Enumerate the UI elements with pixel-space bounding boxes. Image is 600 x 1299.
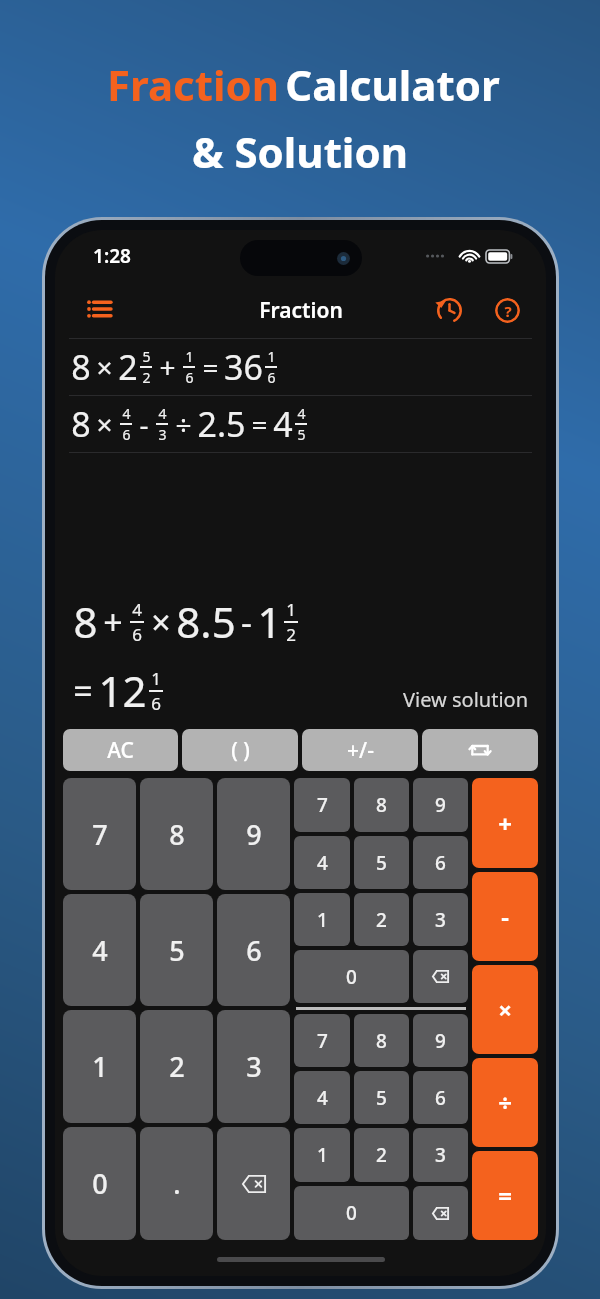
button[interactable]: Delete bbox=[413, 950, 468, 1003]
button[interactable]: 1 bbox=[63, 1010, 136, 1123]
button[interactable]: 5 bbox=[354, 836, 409, 889]
staticText: × bbox=[96, 405, 113, 443]
button[interactable]: 9 bbox=[217, 778, 290, 890]
staticText: 2 bbox=[142, 368, 151, 387]
staticText: 4 bbox=[317, 850, 328, 876]
button[interactable]: Delete bbox=[413, 1186, 468, 1240]
staticText: 6 bbox=[132, 623, 142, 646]
staticText: 5 bbox=[376, 850, 387, 876]
button[interactable]: 4 bbox=[294, 836, 350, 889]
staticText: × bbox=[498, 993, 512, 1026]
staticText: 1 bbox=[185, 347, 194, 366]
button[interactable]: +/- bbox=[302, 729, 418, 771]
staticText: 9 bbox=[246, 816, 262, 853]
staticText: 1 bbox=[257, 593, 282, 650]
staticText: 2 bbox=[376, 1142, 387, 1168]
button[interactable]: 1 bbox=[294, 1128, 350, 1182]
staticText: 5 bbox=[142, 347, 151, 366]
button[interactable]: 9 bbox=[413, 1014, 468, 1067]
button[interactable]: - bbox=[472, 872, 538, 961]
staticText: - bbox=[139, 405, 149, 443]
staticText: 4 bbox=[158, 404, 167, 423]
button[interactable]: 7 bbox=[294, 778, 350, 832]
staticText: + bbox=[159, 348, 176, 386]
staticText: 4 bbox=[132, 598, 142, 621]
staticText: = bbox=[202, 348, 219, 386]
staticText: 9 bbox=[435, 792, 446, 818]
button[interactable]: 7 bbox=[294, 1014, 350, 1067]
button[interactable]: ÷ bbox=[472, 1058, 538, 1147]
staticText: 5 bbox=[297, 425, 306, 444]
staticText: 6 bbox=[435, 1085, 446, 1111]
staticText: × bbox=[96, 348, 113, 386]
staticText: 4 bbox=[122, 404, 131, 423]
staticText: 1 bbox=[286, 598, 296, 621]
button[interactable]: 0 bbox=[294, 1186, 409, 1240]
staticText: 2.5 bbox=[197, 401, 246, 447]
staticText: 1 bbox=[267, 347, 276, 366]
button[interactable]: 9 bbox=[413, 778, 468, 832]
staticText: = bbox=[73, 668, 93, 714]
button[interactable]: 0 bbox=[294, 950, 409, 1003]
button[interactable]: = bbox=[472, 1151, 538, 1240]
button[interactable]: 2 bbox=[140, 1010, 213, 1123]
button[interactable]: 6 bbox=[413, 1071, 468, 1124]
button[interactable]: 2 bbox=[354, 893, 409, 946]
staticText: 4 bbox=[317, 1085, 328, 1111]
staticText: & Solution bbox=[192, 123, 408, 180]
button[interactable]: 4 bbox=[294, 1071, 350, 1124]
button[interactable]: ( ) bbox=[182, 729, 298, 771]
staticText: 3 bbox=[158, 425, 167, 444]
staticText: 8 bbox=[169, 816, 185, 853]
staticText: 7 bbox=[92, 816, 108, 853]
button[interactable]: 3 bbox=[413, 1128, 468, 1182]
button[interactable]: . bbox=[140, 1127, 213, 1240]
button[interactable]: Help bbox=[486, 289, 528, 331]
staticText: × bbox=[151, 599, 171, 645]
staticText: = bbox=[498, 1179, 512, 1212]
button[interactable]: Swap bbox=[422, 729, 538, 771]
button[interactable]: 3 bbox=[217, 1010, 290, 1123]
button[interactable]: Menu bbox=[77, 288, 121, 332]
staticText: 1 bbox=[317, 1142, 328, 1168]
staticText: 9 bbox=[435, 1028, 446, 1054]
staticText: + bbox=[103, 599, 123, 645]
staticText: 5 bbox=[376, 1085, 387, 1111]
staticText: 8 bbox=[71, 401, 91, 447]
staticText: 8 bbox=[73, 593, 98, 650]
button[interactable]: History bbox=[428, 289, 470, 331]
button[interactable]: 3 bbox=[413, 893, 468, 946]
button[interactable]: 2 bbox=[354, 1128, 409, 1182]
button[interactable]: 8 bbox=[55, 396, 546, 452]
button[interactable]: 7 bbox=[63, 778, 136, 890]
button[interactable]: 6 bbox=[217, 894, 290, 1006]
staticText: Calculator bbox=[285, 56, 500, 113]
staticText: 5 bbox=[169, 932, 185, 969]
button[interactable]: 5 bbox=[354, 1071, 409, 1124]
button[interactable]: × bbox=[472, 965, 538, 1054]
staticText: 3 bbox=[435, 1142, 446, 1168]
staticText: - bbox=[241, 599, 252, 645]
staticText: 4 bbox=[92, 932, 108, 969]
button[interactable]: 6 bbox=[413, 836, 468, 889]
button[interactable]: 4 bbox=[63, 894, 136, 1006]
button[interactable]: 8 bbox=[354, 778, 409, 832]
staticText: Fraction bbox=[259, 296, 343, 325]
staticText: ? bbox=[504, 301, 512, 321]
button[interactable]: 0 bbox=[63, 1127, 136, 1240]
button[interactable]: View solution bbox=[403, 686, 528, 719]
staticText: 6 bbox=[151, 692, 161, 715]
staticText: ÷ bbox=[498, 1086, 512, 1119]
button[interactable]: AC bbox=[63, 729, 178, 771]
staticText: 8 bbox=[71, 344, 91, 390]
button[interactable]: 8 bbox=[140, 778, 213, 890]
button[interactable]: 5 bbox=[140, 894, 213, 1006]
staticText: 7 bbox=[317, 1028, 328, 1054]
button[interactable]: 8 bbox=[55, 339, 546, 395]
staticText: +/- bbox=[347, 736, 374, 765]
button[interactable]: Delete bbox=[217, 1127, 290, 1240]
button[interactable]: 1 bbox=[294, 893, 350, 946]
button[interactable]: + bbox=[472, 778, 538, 868]
staticText: View solution bbox=[403, 686, 528, 713]
button[interactable]: 8 bbox=[354, 1014, 409, 1067]
